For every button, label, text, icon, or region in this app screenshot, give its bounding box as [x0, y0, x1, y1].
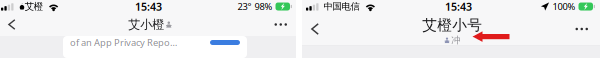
- staticText: 15:43: [445, 0, 472, 14]
- staticText: 艾橙: [25, 1, 43, 12]
- button[interactable]: More: [565, 13, 600, 45]
- staticText: 中国电信: [323, 1, 359, 12]
- staticText: 100%: [552, 0, 575, 13]
- staticText: of an App Privacy Repo…: [70, 36, 177, 49]
- staticText: 23°: [237, 0, 251, 13]
- staticText: 艾小橙: [128, 17, 164, 32]
- staticText: 15:43: [135, 0, 162, 14]
- staticText: 艾橙小号: [422, 16, 482, 34]
- button[interactable]: More: [264, 14, 296, 34]
- staticText: 98%: [254, 0, 272, 13]
- staticText: 冲: [451, 34, 460, 46]
- button[interactable]: Back: [302, 13, 329, 45]
- button[interactable]: Back: [0, 14, 26, 34]
